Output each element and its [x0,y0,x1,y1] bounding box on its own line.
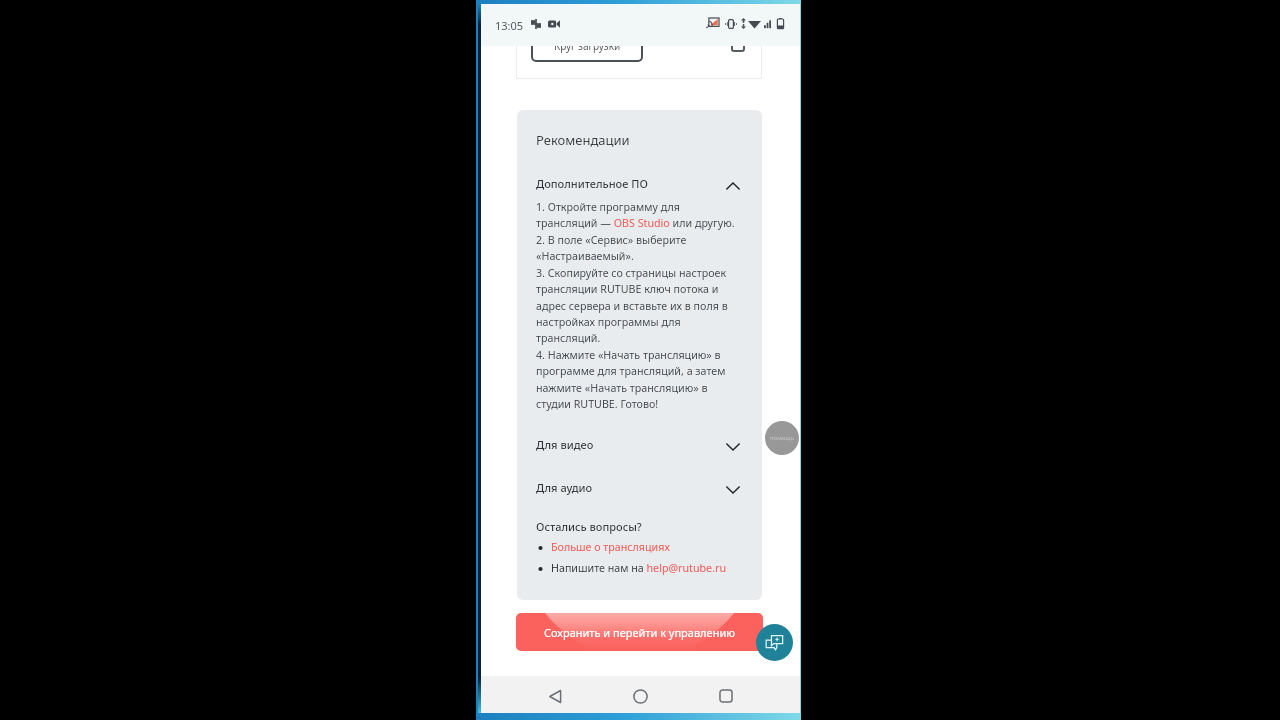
button[interactable]: Home [626,682,654,710]
button[interactable]: Сохранить и перейти к управлению [516,613,763,651]
staticText: 1. Откройте программу для [536,200,680,215]
staticText: 13:05 [495,18,524,33]
staticText: студии RUTUBE. Готово! [536,397,659,412]
button[interactable]: Для аудио [536,480,745,495]
staticText: Для видео [536,437,594,452]
staticText: «Настраиваемый». [536,249,634,264]
button[interactable]: Download [731,46,745,52]
staticText: нажмите «Начать трансляцию» в [536,381,708,396]
staticText: трансляции RUTUBE ключ потока и [536,282,719,297]
staticText: Дополнительное ПО [536,176,648,191]
staticText: Остались вопросы? [536,519,642,534]
staticText: трансляций — OBS Studio или другую. [536,216,735,231]
staticText: трансляций. [536,331,601,346]
staticText: адрес сервера и вставьте их в поля в [536,299,728,314]
button[interactable]: Chat support [756,624,793,661]
button[interactable]: Recents [712,682,740,710]
staticText: Для аудио [536,480,593,495]
staticText: Круг загрузки [554,46,621,53]
staticText: помощь [770,434,795,442]
staticText: 2. В поле «Сервис» выберите [536,233,687,248]
staticText: 3. Скопируйте со страницы настроек [536,266,727,281]
staticText: настройках программы для [536,315,681,330]
staticText: Больше о трансляциях [551,540,670,555]
staticText: Сохранить и перейти к управлению [544,625,736,640]
button[interactable]: Upload [531,46,643,62]
button[interactable]: Help [765,421,799,455]
staticText: Рекомендации [536,131,630,149]
staticText: 4. Нажмите «Начать трансляцию» в [536,348,721,363]
button[interactable]: Для видео [536,437,745,452]
staticText: Напишите нам на help@rutube.ru [551,561,727,576]
button[interactable]: Дополнительное ПО [536,176,745,191]
button[interactable]: Back [541,682,569,710]
staticText: программе для трансляций, а затем [536,364,726,379]
